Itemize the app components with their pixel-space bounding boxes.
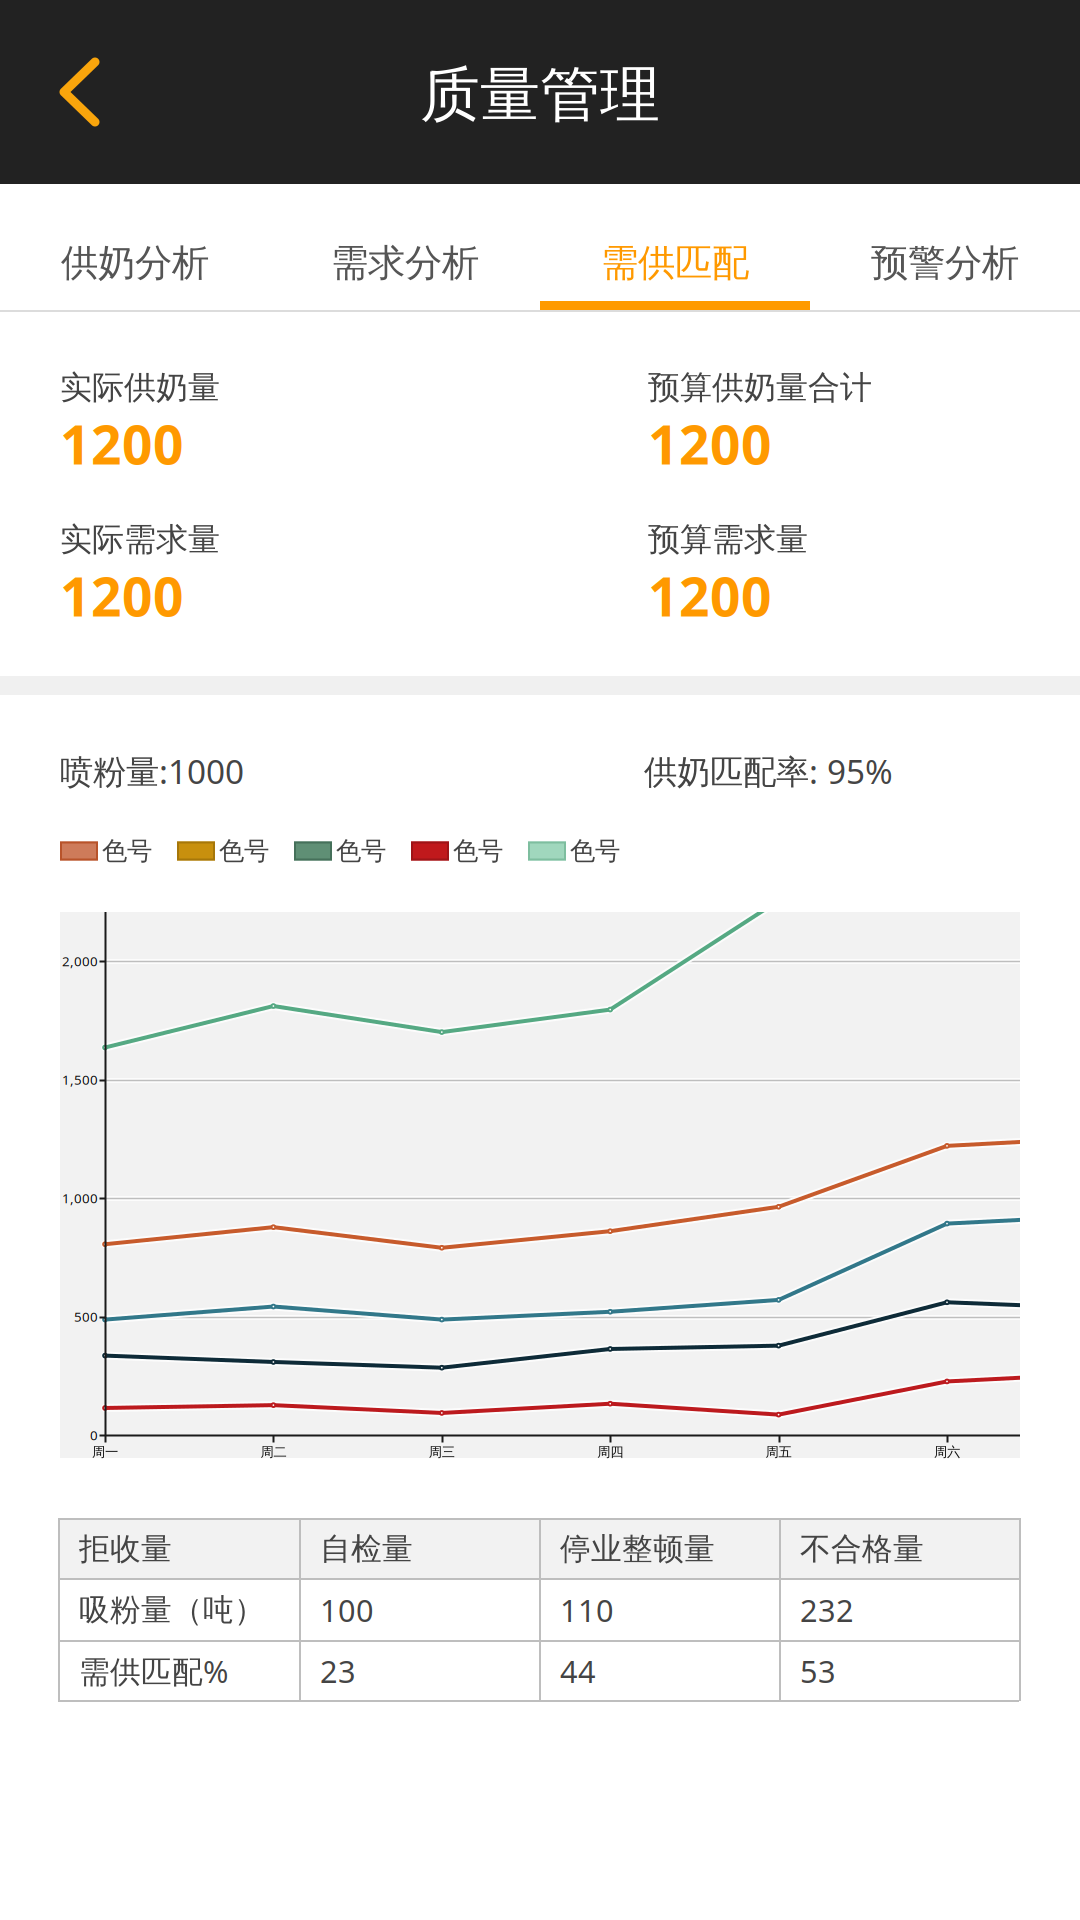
staticText: 1200 bbox=[648, 408, 772, 479]
staticText: 质量管理 bbox=[420, 58, 660, 132]
staticText: 吸粉量（吨） bbox=[79, 1591, 265, 1629]
staticText: 实际供奶量 bbox=[60, 368, 220, 407]
staticText: 预警分析 bbox=[871, 240, 1019, 286]
staticText: 110 bbox=[560, 1590, 614, 1630]
staticText: 拒收量 bbox=[79, 1530, 172, 1568]
staticText: 预算供奶量合计 bbox=[648, 368, 872, 407]
staticText: 500 bbox=[74, 1308, 98, 1325]
staticText: 周二 bbox=[260, 1444, 286, 1460]
staticText: 2,000 bbox=[62, 952, 98, 970]
staticText: 23 bbox=[320, 1651, 356, 1691]
staticText: 色号 bbox=[453, 835, 503, 866]
staticText: 需供匹配 bbox=[601, 240, 749, 286]
staticText: 色号 bbox=[336, 835, 386, 866]
button[interactable]: 预警分析 bbox=[810, 184, 1080, 312]
staticText: 预算需求量 bbox=[648, 520, 808, 559]
button[interactable]: 需供匹配 bbox=[540, 184, 810, 312]
staticText: 1200 bbox=[60, 560, 184, 631]
staticText: 0 bbox=[90, 1426, 98, 1444]
staticText: 实际需求量 bbox=[60, 520, 220, 559]
staticText: 需供匹配% bbox=[79, 1651, 228, 1691]
staticText: 喷粉量:1000 bbox=[60, 749, 244, 793]
staticText: 周六 bbox=[934, 1444, 960, 1460]
staticText: 44 bbox=[560, 1651, 596, 1691]
staticText: 232 bbox=[800, 1590, 854, 1630]
staticText: 100 bbox=[320, 1590, 374, 1630]
staticText: 1200 bbox=[60, 408, 184, 479]
staticText: 53 bbox=[800, 1651, 836, 1691]
staticText: 色号 bbox=[570, 835, 620, 866]
staticText: 1,500 bbox=[62, 1071, 98, 1088]
staticText: 色号 bbox=[102, 835, 152, 866]
staticText: 周五 bbox=[766, 1444, 792, 1460]
staticText: 周四 bbox=[597, 1444, 623, 1460]
staticText: 周一 bbox=[92, 1444, 118, 1460]
staticText: 供奶匹配率: 95% bbox=[644, 749, 893, 793]
staticText: 供奶分析 bbox=[61, 240, 209, 286]
button[interactable]: 需求分析 bbox=[270, 184, 540, 312]
staticText: 色号 bbox=[219, 835, 269, 866]
staticText: 1,000 bbox=[62, 1189, 98, 1207]
staticText: 不合格量 bbox=[800, 1530, 924, 1568]
button[interactable]: 返回 bbox=[0, 0, 147, 184]
button[interactable]: 供奶分析 bbox=[0, 184, 270, 312]
staticText: 需求分析 bbox=[331, 240, 479, 286]
staticText: 自检量 bbox=[320, 1530, 413, 1568]
staticText: 1200 bbox=[648, 560, 772, 631]
staticText: 停业整顿量 bbox=[560, 1530, 715, 1568]
staticText: 周三 bbox=[429, 1444, 455, 1460]
